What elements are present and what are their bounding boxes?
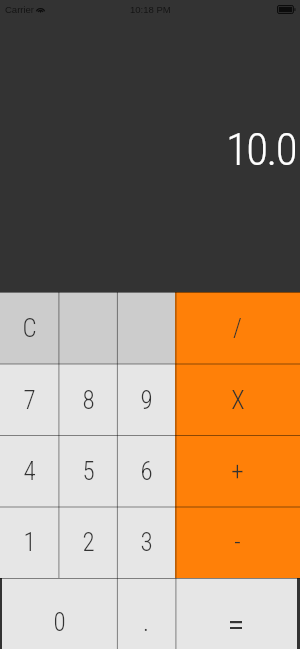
button[interactable]: - [175, 507, 300, 578]
button[interactable]: 7 [0, 364, 59, 436]
button[interactable]: + [175, 436, 300, 507]
other: Battery full [277, 5, 296, 14]
staticText: 10.0 [226, 123, 296, 176]
button[interactable]: 3 [117, 507, 175, 578]
other: Wi-Fi signal [36, 5, 45, 13]
button[interactable]: blank key [59, 292, 117, 364]
button[interactable]: 8 [59, 364, 117, 436]
staticText: - [234, 528, 241, 557]
staticText: 6 [140, 457, 153, 486]
staticText: 0 [53, 608, 66, 637]
staticText: C [22, 314, 37, 343]
staticText: 3 [140, 528, 153, 557]
staticText: X [231, 386, 245, 415]
staticText: 2 [82, 528, 95, 557]
staticText: 10:18 PM [130, 4, 171, 15]
staticText: / [233, 314, 242, 343]
button[interactable]: X [175, 364, 300, 436]
staticText: . [143, 608, 149, 637]
button[interactable]: / [175, 292, 300, 364]
button[interactable]: 1 [0, 507, 59, 578]
button[interactable]: 2 [59, 507, 117, 578]
button[interactable]: C [0, 292, 59, 364]
button[interactable]: blank key [117, 292, 175, 364]
staticText: 9 [140, 386, 153, 415]
button[interactable]: . [117, 578, 175, 649]
button[interactable]: 4 [0, 436, 59, 507]
button[interactable]: equals [175, 578, 297, 649]
button[interactable]: 0 [2, 578, 117, 649]
button[interactable]: 6 [117, 436, 175, 507]
button[interactable]: 5 [59, 436, 117, 507]
staticText: 5 [82, 457, 95, 486]
staticText: 1 [23, 528, 36, 557]
staticText: 8 [82, 386, 95, 415]
button[interactable]: 9 [117, 364, 175, 436]
staticText: 4 [23, 457, 36, 486]
staticText: Carrier [5, 4, 35, 15]
staticText: 7 [23, 386, 36, 415]
staticText: + [231, 457, 244, 486]
